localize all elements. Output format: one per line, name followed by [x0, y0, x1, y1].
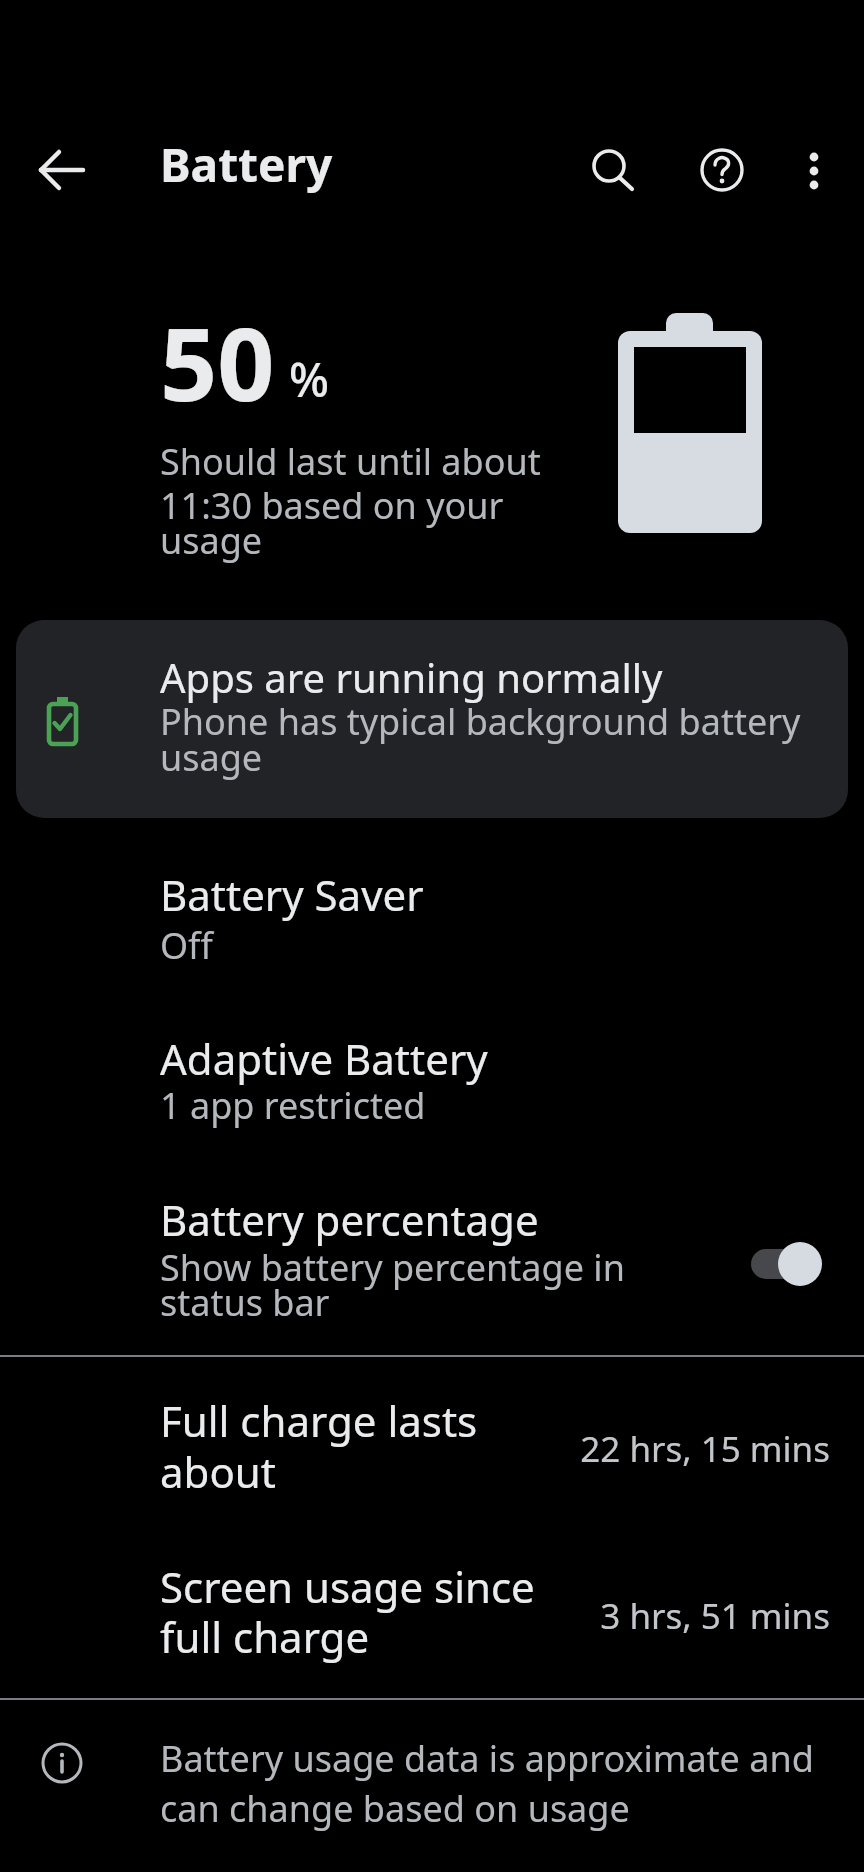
staticText: usage	[160, 733, 263, 782]
button[interactable]: Battery percentage	[0, 1170, 864, 1345]
staticText: Show battery percentage in	[160, 1243, 625, 1292]
staticText: 1 app restricted	[160, 1081, 426, 1130]
staticText: 3 hrs, 51 mins	[0, 1592, 830, 1640]
staticText: Off	[160, 921, 213, 970]
button[interactable]: Adaptive Battery	[0, 1010, 864, 1140]
staticText: Battery usage data is approximate and	[160, 1734, 814, 1783]
staticText: 22 hrs, 15 mins	[0, 1425, 830, 1473]
button[interactable]: Screen usage since	[0, 1536, 864, 1696]
staticText: 50	[160, 294, 275, 430]
button[interactable]	[786, 138, 842, 194]
staticText: Battery percentage	[160, 1191, 539, 1248]
staticText: Battery Saver	[160, 866, 424, 923]
staticText: Screen usage since	[160, 1558, 535, 1615]
button[interactable]: Apps are running normally	[16, 620, 848, 818]
staticText: status bar	[160, 1278, 330, 1327]
staticText: %	[289, 347, 330, 411]
staticText: Apps are running normally	[160, 650, 663, 704]
staticText: Battery	[160, 133, 333, 196]
staticText: can change based on usage	[160, 1784, 630, 1833]
button[interactable]	[28, 138, 92, 202]
staticText: Adaptive Battery	[160, 1030, 488, 1087]
button[interactable]: Battery Saver	[0, 845, 864, 975]
staticText: Full charge lasts	[160, 1392, 478, 1449]
staticText: usage	[160, 516, 263, 565]
button[interactable]	[690, 138, 754, 202]
staticText: Phone has typical background battery	[160, 697, 801, 746]
button[interactable]: Full charge lasts	[0, 1368, 864, 1536]
button[interactable]	[580, 138, 644, 202]
staticText: Should last until about 11:30 based on y…	[160, 437, 541, 529]
staticText: about	[160, 1443, 276, 1500]
staticText: full charge	[160, 1608, 370, 1665]
